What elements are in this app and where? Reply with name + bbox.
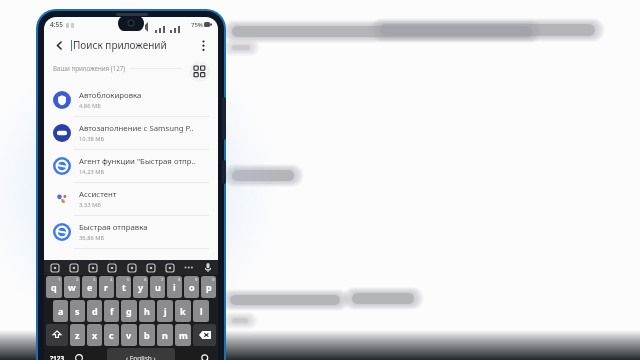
staticText: u [155,281,161,293]
button[interactable]: More options [195,37,211,53]
staticText: c [109,329,114,341]
staticText: f [110,305,114,317]
staticText: 75% [191,21,203,29]
staticText: ‹ English › [126,354,156,360]
staticText: k [180,305,186,317]
button[interactable]: 3 [82,276,97,298]
button[interactable]: Автоблокировка [44,84,218,117]
staticText: 5 [127,277,130,283]
staticText: y [138,281,144,293]
button[interactable]: Keyboard tool 2 [87,262,98,273]
button[interactable]: 4 [99,276,114,298]
staticText: l [200,305,203,317]
staticText: m [179,329,188,341]
button[interactable]: s [70,300,85,322]
staticText: i [173,281,176,293]
button[interactable]: 1 [46,276,62,298]
button[interactable]: z [70,324,85,346]
staticText: Автоблокировка [79,90,142,101]
button[interactable]: Автозаполнение с Samsung P.. [44,117,218,150]
staticText: o [189,281,195,293]
button[interactable]: k [175,300,191,322]
button[interactable]: Агент функции "Быстрая отпр.. [44,150,218,183]
button[interactable]: Keyboard tool 5 [145,262,156,273]
staticText: n [162,329,168,341]
staticText: v [126,329,132,341]
button[interactable]: g [121,300,137,322]
button[interactable]: Keyboard tool 6 [164,262,175,273]
button[interactable]: a [53,300,68,322]
button[interactable]: 9 [184,276,199,298]
staticText: t [122,281,126,293]
button[interactable]: 5 [116,276,131,298]
staticText: 3 [93,277,96,283]
staticText: 10,38 МБ [79,135,105,143]
button[interactable]: f [104,300,119,322]
button[interactable]: c [104,324,119,346]
staticText: 36,86 МБ [79,234,105,242]
staticText: 7 [161,277,164,283]
staticText: Поиск приложений [73,38,167,52]
button[interactable]: b [139,324,155,346]
staticText: Быстрая отправка [79,222,148,233]
staticText: a [58,305,64,317]
staticText: q [51,281,57,293]
button[interactable]: m [175,324,191,346]
staticText: 8 [178,277,181,283]
button[interactable]: Key [46,324,68,346]
button[interactable]: Back [51,37,67,53]
staticText: r [104,281,109,293]
staticText: h [144,305,150,317]
staticText: d [92,305,98,317]
button[interactable]: v [121,324,137,346]
button[interactable]: 7 [150,276,165,298]
staticText: z [75,329,80,341]
staticText: w [68,281,76,293]
staticText: 4 [110,277,113,283]
button[interactable]: l [193,300,209,322]
staticText: p [206,281,212,293]
button[interactable]: d [87,300,102,322]
button[interactable]: ?123 [45,348,69,360]
button[interactable]: Keyboard tool 0 [49,262,60,273]
staticText: e [87,281,93,293]
button[interactable]: More [183,262,194,273]
button[interactable]: 6 [133,276,148,298]
button[interactable]: Keyboard tool 3 [106,262,117,273]
button[interactable]: x [87,324,102,346]
staticText: b [144,329,150,341]
button[interactable]: 0 [201,276,216,298]
button[interactable]: Voice input [202,262,213,273]
button[interactable]: Key [193,324,216,346]
staticText: x [92,329,98,341]
staticText: 4:55 [50,20,63,29]
button[interactable]: ‹ English › [107,348,175,360]
button[interactable]: j [157,300,173,322]
button[interactable]: Search [193,348,217,360]
button[interactable]: h [139,300,155,322]
button[interactable]: Keyboard tool 4 [126,262,137,273]
staticText: j [164,305,167,317]
staticText: 2 [76,277,79,283]
staticText: ?123 [50,354,65,360]
staticText: 6 [144,277,147,283]
button[interactable]: Быстрая отправка [44,216,218,249]
staticText: 3,33 МБ [79,201,101,209]
staticText: Агент функции "Быстрая отпр.. [79,156,196,167]
button[interactable]: Grid view [189,61,210,82]
staticText: Ассистент [79,189,117,200]
staticText: 14,23 МБ [79,168,105,176]
button[interactable]: Ассистент [44,183,218,216]
staticText: Автозаполнение с Samsung P.. [79,123,194,134]
button[interactable]: 8 [167,276,182,298]
button[interactable]: Emoji [69,348,89,360]
staticText: 1 [58,277,61,283]
button[interactable]: n [157,324,173,346]
staticText: 0 [212,277,215,283]
staticText: 9 [195,277,198,283]
staticText: g [126,305,132,317]
button[interactable]: Keyboard tool 1 [68,262,79,273]
button[interactable]: 2 [64,276,80,298]
